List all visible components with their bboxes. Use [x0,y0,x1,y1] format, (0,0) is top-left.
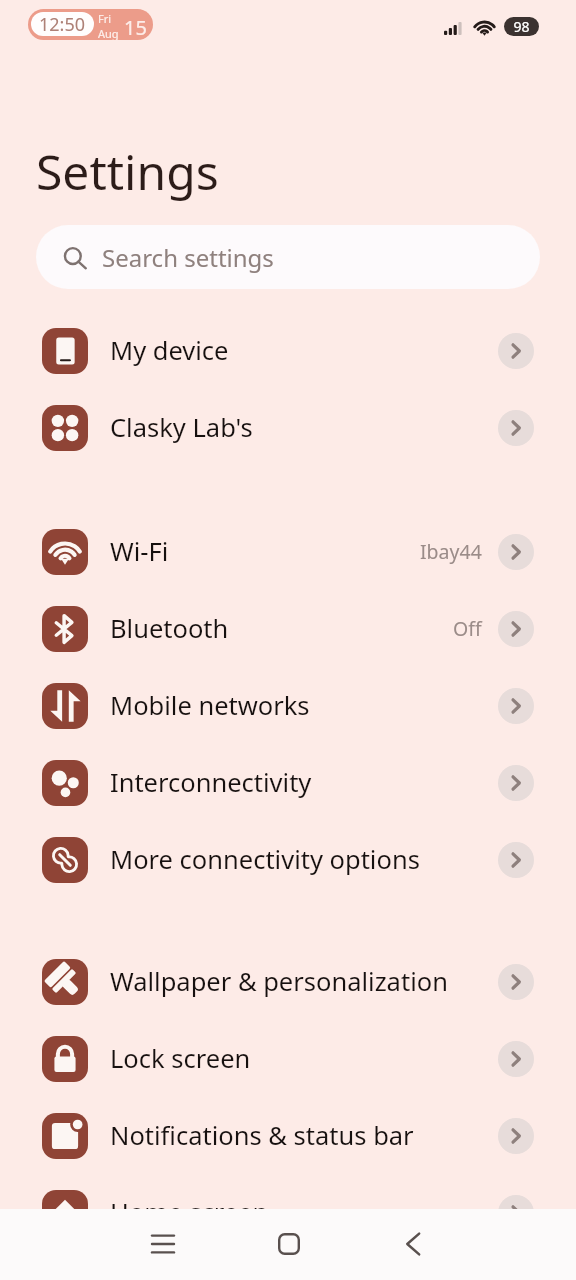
button[interactable]: Lock screen [0,1020,576,1097]
button[interactable]: Bluetooth [0,590,576,667]
button[interactable]: Home screen [0,1174,576,1251]
staticText: Home screen [110,1195,269,1230]
staticText: Settings [36,139,219,204]
button[interactable]: Interconnectivity [0,744,576,821]
staticText: Wallpaper & personalization [110,964,448,999]
staticText: Search settings [102,241,274,274]
button[interactable]: Notifications & status bar [0,1097,576,1174]
staticText: Ibay44 [420,538,482,565]
staticText: Lock screen [110,1041,251,1076]
button[interactable]: My device [0,312,576,389]
button[interactable]: Mobile networks [0,667,576,744]
staticText: Notifications & status bar [110,1118,414,1153]
staticText: 15 [124,14,147,40]
staticText: Aug [98,26,119,40]
button[interactable]: Clasky Lab's [0,389,576,466]
staticText: Bluetooth [110,611,229,646]
button[interactable]: More connectivity options [0,821,576,898]
staticText: Wi-Fi [110,534,169,569]
staticText: Mobile networks [110,688,310,723]
staticText: 98 [513,17,530,36]
button[interactable]: Wallpaper & personalization [0,943,576,1020]
button[interactable]: Search settings [36,225,540,289]
button[interactable]: Wi-Fi [0,513,576,590]
staticText: Clasky Lab's [110,410,253,445]
staticText: Off [453,615,482,642]
staticText: Interconnectivity [110,765,312,800]
staticText: More connectivity options [110,842,420,877]
staticText: 12:50 [39,12,86,36]
button[interactable]: Home [257,1212,321,1276]
button[interactable]: Back [381,1212,445,1276]
staticText: My device [110,333,229,368]
staticText: Fri [98,11,112,26]
button[interactable]: Recent apps [131,1212,195,1276]
